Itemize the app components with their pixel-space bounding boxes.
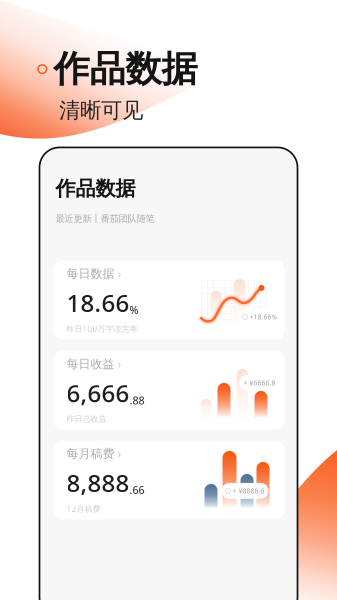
staticText: 作品数据 <box>55 176 135 201</box>
staticText: +18.66% <box>249 312 277 321</box>
staticText: 18.66 <box>66 287 129 319</box>
staticText: 8,888 <box>66 467 129 499</box>
staticText: 作品数据 <box>53 47 197 91</box>
staticText: 每日收益 <box>66 357 114 371</box>
staticText: + ¥8888.6 <box>232 486 264 495</box>
staticText: % <box>129 303 138 317</box>
staticText: 最近更新丨番茄团队随笔 <box>55 213 154 224</box>
staticText: 6,666 <box>66 377 129 409</box>
staticText: .88 <box>129 393 144 407</box>
staticText: › <box>117 356 121 372</box>
staticText: 12月稿费 <box>66 503 100 514</box>
button[interactable]: 每日数据 <box>53 260 284 339</box>
button[interactable]: 每月稿费 <box>53 440 284 519</box>
staticText: 每月稿费 <box>66 446 114 461</box>
staticText: › <box>117 266 121 282</box>
staticText: .66 <box>129 483 144 497</box>
staticText: 昨日总收益 <box>66 414 106 424</box>
staticText: 每日数据 <box>66 266 114 281</box>
staticText: › <box>117 446 121 462</box>
staticText: 清晰可见 <box>59 97 143 123</box>
staticText: + ¥6666.8 <box>243 378 275 387</box>
button[interactable]: 每日收益 <box>53 350 284 429</box>
staticText: 昨日100万字读完率 <box>66 323 137 334</box>
